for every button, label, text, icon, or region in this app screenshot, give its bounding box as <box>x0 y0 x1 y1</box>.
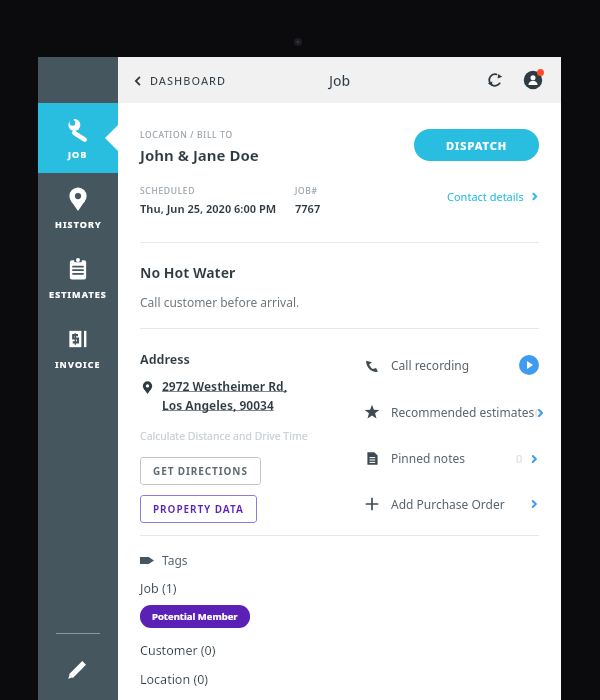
staticText: DISPATCH <box>446 138 508 153</box>
staticText: LOCATION / BILL TO <box>140 129 233 141</box>
button[interactable]: Add Purchase Order <box>363 495 539 513</box>
staticText: Address <box>140 351 190 368</box>
button[interactable]: HISTORY <box>38 173 118 243</box>
button[interactable]: PROPERTY DATA <box>140 495 257 523</box>
staticText: DASHBOARD <box>150 73 227 88</box>
button[interactable]: JOB <box>38 103 118 173</box>
staticText: Contact details <box>447 189 524 204</box>
button[interactable]: 2972 Westheimer Rd, <box>140 378 288 413</box>
staticText: John & Jane Doe <box>140 145 259 165</box>
staticText: INVOICE <box>55 358 101 370</box>
staticText: ESTIMATES <box>49 288 107 300</box>
staticText: Add Purchase Order <box>391 496 505 512</box>
staticText: Customer (0) <box>140 642 216 659</box>
staticText: Pinned notes <box>391 450 465 466</box>
button[interactable]: Refresh <box>481 66 509 94</box>
button[interactable]: DISPATCH <box>414 129 539 161</box>
button[interactable]: Account <box>519 66 547 94</box>
staticText: 2972 Westheimer Rd, <box>162 378 288 394</box>
staticText: 0 <box>516 451 523 466</box>
staticText: SCHEDULED <box>140 185 196 197</box>
staticText: Calculate Distance and Drive Time <box>140 429 308 443</box>
button[interactable]: GET DIRECTIONS <box>140 457 261 485</box>
staticText: Tags <box>162 552 188 568</box>
staticText: 7767 <box>295 201 321 216</box>
staticText: Los Angeles, 90034 <box>162 397 274 413</box>
staticText: HISTORY <box>55 218 102 230</box>
staticText: JOB# <box>295 185 318 197</box>
button[interactable]: INVOICE <box>38 313 118 383</box>
staticText: No Hot Water <box>140 263 236 282</box>
staticText: Job <box>329 71 351 90</box>
staticText: Thu, Jun 25, 2020 6:00 PM <box>140 201 277 216</box>
staticText: Call customer before arrival. <box>140 294 300 310</box>
staticText: PROPERTY DATA <box>153 502 244 516</box>
button[interactable]: Recommended estimates <box>363 403 539 421</box>
staticText: GET DIRECTIONS <box>153 464 248 478</box>
button[interactable]: DASHBOARD <box>132 73 227 88</box>
button[interactable]: Play recording <box>519 355 539 375</box>
button[interactable]: Call recording <box>363 355 539 375</box>
staticText: Job (1) <box>140 580 177 597</box>
button[interactable]: Edit <box>61 652 95 686</box>
staticText: Call recording <box>391 357 470 373</box>
staticText: JOB <box>68 148 88 160</box>
button[interactable]: ESTIMATES <box>38 243 118 313</box>
button[interactable]: Potential Member <box>140 605 250 628</box>
staticText: Recommended estimates <box>391 404 535 420</box>
staticText: 0 <box>535 405 539 420</box>
button[interactable]: Contact details <box>447 189 539 204</box>
staticText: Location (0) <box>140 671 209 688</box>
staticText: Potential Member <box>152 610 238 623</box>
button[interactable]: Pinned notes <box>363 449 539 467</box>
